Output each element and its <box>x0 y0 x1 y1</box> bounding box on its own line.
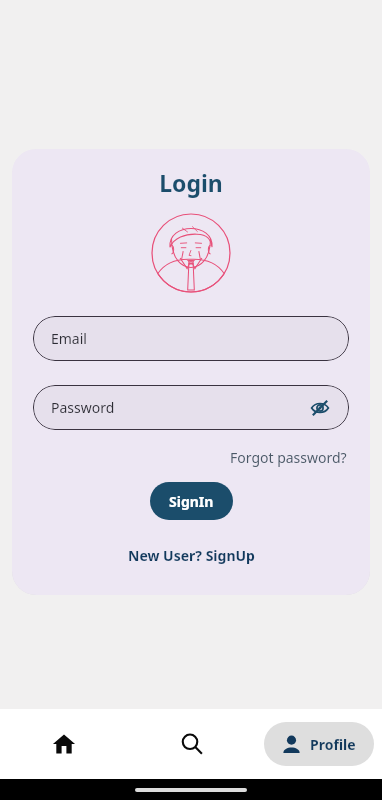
staticText: Login <box>159 167 223 198</box>
staticText: Forgot password? <box>230 448 347 467</box>
staticText: SignIn <box>169 492 214 511</box>
staticText: Profile <box>310 735 356 754</box>
staticText: Password <box>51 398 307 417</box>
staticText: Email <box>51 329 333 348</box>
button[interactable]: New User? SignUp <box>125 544 258 567</box>
staticText: New User? SignUp <box>128 546 255 565</box>
button[interactable]: Show password <box>307 395 333 421</box>
button[interactable]: Email <box>33 316 349 361</box>
button[interactable]: Profile <box>264 722 374 766</box>
button[interactable]: Home <box>0 709 128 779</box>
button[interactable]: Forgot password? <box>228 446 349 469</box>
button[interactable]: SignIn <box>150 482 233 520</box>
button[interactable]: Search <box>128 709 255 779</box>
button[interactable]: Password <box>33 385 349 430</box>
